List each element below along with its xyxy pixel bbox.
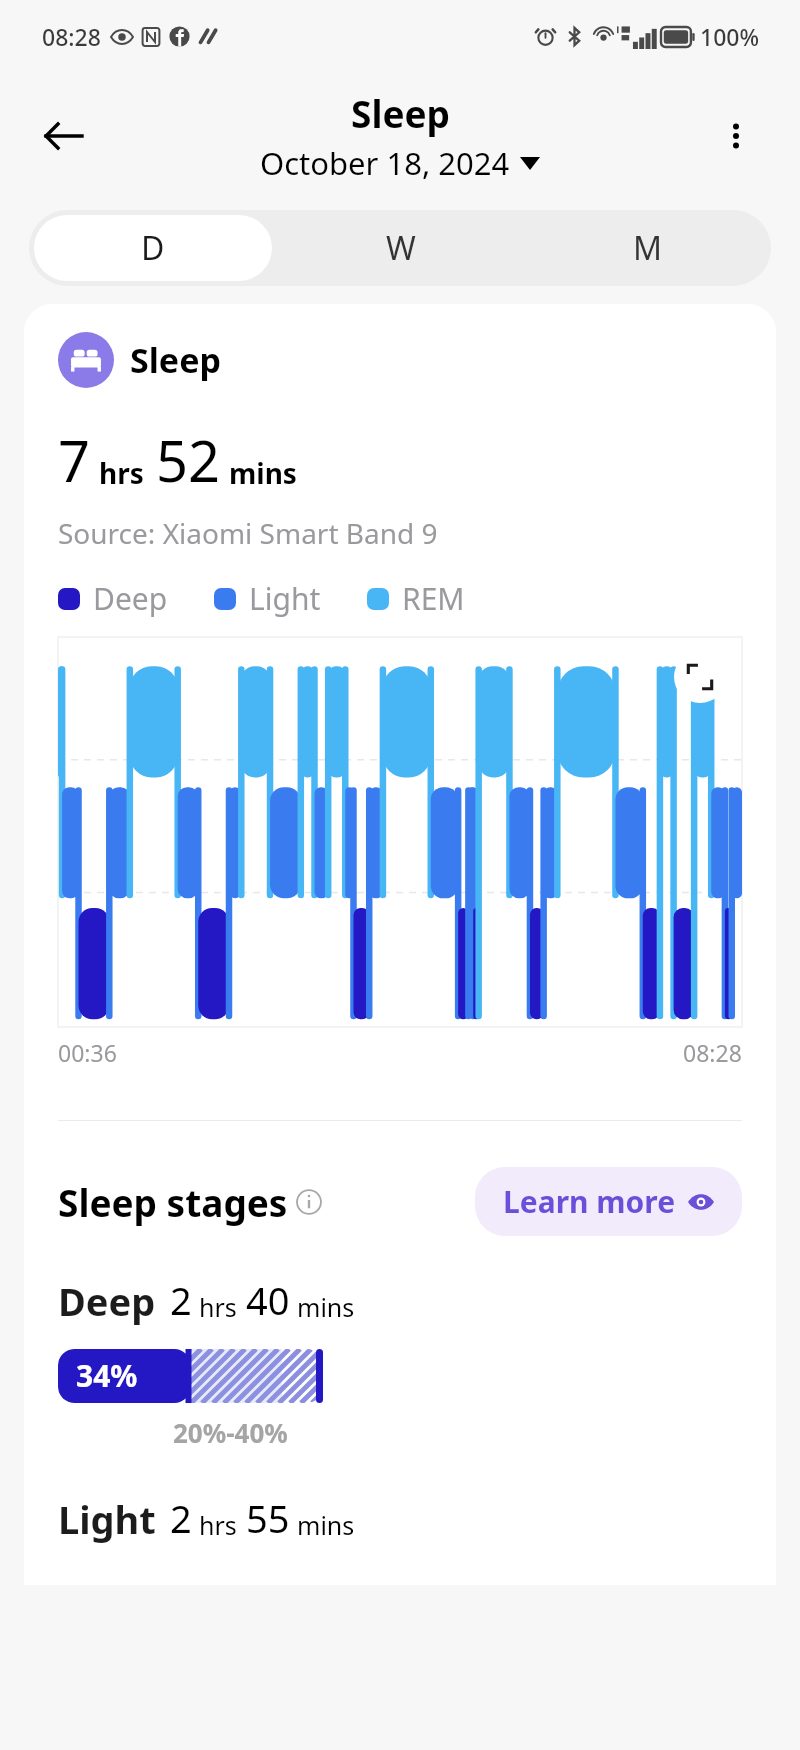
staticText: 55 [246, 1492, 290, 1544]
staticText: Sleep [130, 337, 221, 383]
staticText: mins [297, 1290, 355, 1324]
staticText: 2 [170, 1492, 192, 1544]
button[interactable]: W [282, 215, 519, 281]
button[interactable]: More options [708, 108, 764, 164]
staticText: Learn more [503, 1181, 676, 1222]
staticText: REM [402, 578, 465, 619]
staticText: Deep [93, 578, 168, 619]
staticText: mins [229, 454, 297, 492]
staticText: 52 [156, 422, 221, 498]
staticText: 00:36 [58, 1037, 117, 1068]
staticText: 2 [170, 1274, 192, 1326]
button[interactable]: Sleep stages [58, 1177, 322, 1227]
staticText: 100% [700, 21, 760, 52]
staticText: hrs [99, 454, 144, 492]
staticText: October 18, 2024 [260, 142, 510, 184]
staticText: Deep [58, 1275, 156, 1327]
staticText: hrs [199, 1290, 237, 1324]
staticText: W [386, 226, 416, 270]
staticText: 08:28 [42, 21, 101, 52]
staticText: Light [249, 578, 321, 619]
staticText: 08:28 [683, 1037, 742, 1068]
button[interactable]: D [34, 215, 272, 281]
button[interactable]: M [529, 215, 766, 281]
staticText: 20%-40% [173, 1415, 288, 1450]
staticText: 40 [246, 1274, 290, 1326]
staticText: D [141, 226, 165, 270]
button[interactable]: October 18, 2024 [260, 142, 540, 184]
staticText: M [633, 226, 663, 270]
staticText: 7 [58, 422, 91, 498]
staticText: mins [297, 1508, 355, 1542]
button[interactable]: Learn more [475, 1167, 742, 1236]
staticText: Light [58, 1493, 156, 1545]
staticText: Sleep stages [58, 1177, 288, 1227]
button[interactable]: Expand chart [674, 651, 726, 703]
staticText: Source: Xiaomi Smart Band 9 [58, 514, 438, 552]
staticText: hrs [199, 1508, 237, 1542]
button[interactable]: Back [36, 108, 92, 164]
staticText: Sleep [351, 88, 450, 138]
staticText: 34% [76, 1355, 138, 1396]
